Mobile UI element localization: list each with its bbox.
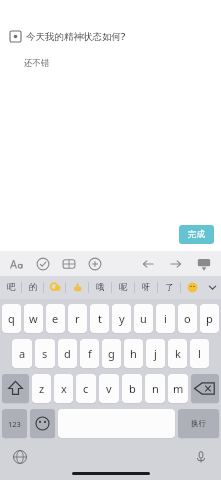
button[interactable]: 呢 bbox=[112, 276, 135, 299]
staticText: r bbox=[75, 311, 80, 326]
button[interactable]: 了 bbox=[158, 276, 181, 299]
button[interactable]: p bbox=[200, 304, 219, 333]
button[interactable]: Previous bbox=[141, 257, 155, 271]
button[interactable]: m bbox=[168, 374, 188, 403]
staticText: 换行 bbox=[191, 419, 206, 428]
button[interactable]: h bbox=[124, 339, 143, 368]
button[interactable] bbox=[44, 276, 66, 299]
button[interactable]: 完成 bbox=[179, 225, 214, 244]
staticText: g bbox=[108, 346, 115, 361]
staticText: o bbox=[184, 311, 191, 326]
staticText: l bbox=[198, 346, 201, 361]
staticText: x bbox=[61, 381, 67, 396]
button[interactable]: b bbox=[122, 374, 142, 403]
button[interactable]: 呀 bbox=[135, 276, 158, 299]
button[interactable]: Voice input bbox=[194, 450, 208, 464]
button[interactable]: o bbox=[178, 304, 197, 333]
button[interactable]: Image bbox=[62, 257, 76, 271]
button[interactable] bbox=[66, 276, 89, 299]
button[interactable]: 换行 bbox=[178, 409, 219, 438]
staticText: y bbox=[119, 311, 125, 326]
staticText: 的 bbox=[29, 282, 38, 293]
button[interactable]: t bbox=[90, 304, 109, 333]
staticText: q bbox=[8, 311, 15, 326]
staticText: t bbox=[98, 311, 102, 326]
staticText: d bbox=[64, 346, 71, 361]
button[interactable]: Next bbox=[169, 257, 183, 271]
staticText: b bbox=[129, 381, 136, 396]
button[interactable]: c bbox=[76, 374, 96, 403]
staticText: 123 bbox=[8, 419, 21, 429]
button[interactable]: Switch keyboard bbox=[13, 450, 27, 464]
button[interactable]: i bbox=[156, 304, 175, 333]
button[interactable] bbox=[181, 276, 204, 299]
button[interactable]: j bbox=[146, 339, 165, 368]
staticText: n bbox=[152, 381, 159, 396]
staticText: a bbox=[19, 346, 26, 361]
button[interactable]: w bbox=[24, 304, 43, 333]
button[interactable]: f bbox=[80, 339, 99, 368]
staticText: h bbox=[130, 346, 137, 361]
button[interactable]: Collapse suggestions bbox=[204, 276, 221, 299]
staticText: s bbox=[42, 346, 48, 361]
staticText: k bbox=[175, 346, 181, 361]
button[interactable]: d bbox=[58, 339, 77, 368]
button[interactable]: q bbox=[2, 304, 21, 333]
button[interactable]: r bbox=[68, 304, 87, 333]
button[interactable]: v bbox=[99, 374, 119, 403]
button[interactable]: a bbox=[12, 339, 32, 368]
button[interactable]: 123 bbox=[2, 409, 27, 438]
staticText: 还不错 bbox=[24, 58, 50, 69]
button[interactable]: n bbox=[145, 374, 165, 403]
button[interactable]: e bbox=[46, 304, 65, 333]
button[interactable]: x bbox=[54, 374, 73, 403]
staticText: i bbox=[164, 311, 167, 326]
staticText: c bbox=[83, 381, 89, 396]
staticText: 呀 bbox=[142, 282, 151, 293]
staticText: 完成 bbox=[188, 229, 205, 240]
button[interactable]: Check bbox=[36, 257, 50, 271]
button[interactable]: Emoji bbox=[30, 409, 55, 438]
staticText: 哦 bbox=[96, 282, 105, 293]
button[interactable]: Hide keyboard bbox=[197, 257, 211, 271]
button[interactable]: l bbox=[190, 339, 209, 368]
button[interactable]: Shift bbox=[2, 374, 29, 403]
staticText: 了 bbox=[165, 282, 174, 293]
button[interactable]: Add bbox=[88, 257, 102, 271]
button[interactable]: Prompt bbox=[10, 30, 126, 43]
staticText: v bbox=[106, 381, 112, 396]
other: Prompt bbox=[10, 31, 21, 42]
button[interactable]: 的 bbox=[22, 276, 44, 299]
staticText: 吧 bbox=[7, 282, 16, 293]
button[interactable]: 吧 bbox=[0, 276, 22, 299]
button[interactable]: k bbox=[168, 339, 187, 368]
button[interactable]: s bbox=[35, 339, 55, 368]
staticText: 今天我的精神状态如何? bbox=[26, 30, 126, 43]
button[interactable]: Text format bbox=[10, 257, 24, 271]
button[interactable]: g bbox=[102, 339, 121, 368]
button[interactable]: 哦 bbox=[89, 276, 112, 299]
button[interactable]: Backspace bbox=[191, 374, 219, 403]
staticText: m bbox=[173, 381, 184, 396]
button[interactable]: u bbox=[134, 304, 153, 333]
button[interactable]: z bbox=[32, 374, 51, 403]
staticText: f bbox=[88, 346, 92, 361]
staticText: u bbox=[140, 311, 147, 326]
staticText: p bbox=[206, 311, 213, 326]
staticText: 呢 bbox=[119, 282, 128, 293]
button[interactable]: y bbox=[112, 304, 131, 333]
staticText: e bbox=[52, 311, 59, 326]
staticText: w bbox=[29, 311, 38, 326]
staticText: z bbox=[39, 381, 45, 396]
staticText: j bbox=[154, 346, 157, 361]
